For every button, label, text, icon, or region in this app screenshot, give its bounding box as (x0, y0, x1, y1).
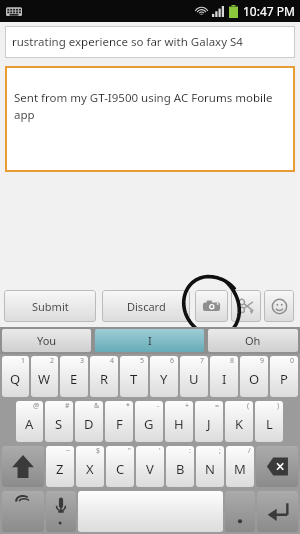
button[interactable]: 7 (180, 356, 208, 397)
staticText: Sent from my GT-I9500 using AC Forums mo… (14, 90, 281, 122)
staticText: A (25, 415, 34, 433)
staticText: @ (33, 401, 40, 411)
staticText: W (38, 370, 51, 388)
staticText: R (100, 370, 109, 388)
button[interactable]: $ (76, 446, 104, 487)
staticText: ( (247, 401, 250, 411)
staticText: - (157, 401, 160, 411)
staticText: 8 (230, 356, 235, 366)
button[interactable]: : (166, 446, 194, 487)
button[interactable]: 4 (90, 356, 118, 397)
button[interactable]: 9 (240, 356, 268, 397)
staticText: H (174, 415, 184, 433)
staticText: I (148, 333, 152, 348)
staticText: D (84, 415, 94, 433)
staticText: Submit (32, 299, 69, 314)
button[interactable]: Backspace (256, 446, 298, 487)
staticText: * (126, 401, 130, 411)
button[interactable]: 0 (270, 356, 298, 397)
button[interactable]: 1 (2, 356, 29, 397)
staticText: C (116, 460, 125, 478)
button[interactable]: / (226, 446, 254, 487)
button[interactable]: Discard (102, 290, 190, 322)
button[interactable]: = (195, 401, 223, 442)
button[interactable]: # (45, 401, 73, 442)
staticText: 7 (200, 356, 205, 366)
staticText: 10:47 PM (243, 3, 295, 19)
staticText: ; (219, 446, 221, 456)
staticText: ~ (66, 446, 71, 456)
staticText: M (234, 460, 246, 478)
staticText: ' (159, 446, 161, 456)
staticText: G (144, 415, 154, 433)
button[interactable]: * (105, 401, 133, 442)
staticText: Discard (127, 299, 166, 314)
button[interactable]: & (75, 401, 103, 442)
staticText: J (207, 415, 211, 433)
button[interactable]: Oh (208, 329, 298, 352)
staticText: 2 (50, 356, 55, 366)
staticText: ) (277, 401, 280, 411)
staticText: 0 (290, 356, 295, 366)
button[interactable]: ) (255, 401, 283, 442)
staticText: E (70, 370, 78, 388)
button[interactable]: ' (136, 446, 164, 487)
staticText: Q (10, 370, 21, 388)
staticText: F (116, 415, 123, 433)
staticText: / (248, 446, 251, 456)
staticText: # (65, 401, 70, 411)
staticText: 9 (260, 356, 265, 366)
staticText: : (189, 446, 191, 456)
button[interactable]: Sent from my GT-I9500 using AC Forums mo… (5, 66, 295, 172)
button[interactable]: Voice input (46, 491, 76, 532)
staticText: I (222, 370, 227, 388)
staticText: P (280, 370, 288, 388)
staticText: X (86, 460, 94, 478)
button[interactable]: - (135, 401, 163, 442)
button[interactable]: You (2, 329, 91, 352)
button[interactable]: 6 (150, 356, 178, 397)
button[interactable]: I (95, 329, 204, 352)
button[interactable]: Shift (2, 446, 44, 487)
button[interactable]: Emoticon (264, 290, 294, 322)
staticText: O (249, 370, 260, 388)
button[interactable]: Enter (257, 491, 298, 532)
button[interactable] (78, 491, 223, 532)
staticText: B (176, 460, 185, 478)
staticText: U (189, 370, 199, 388)
button[interactable]: 8 (210, 356, 238, 397)
button[interactable]: Period (225, 491, 255, 532)
staticText: T (130, 370, 138, 388)
button[interactable]: rustrating experience so far with Galaxy… (5, 26, 295, 58)
button[interactable]: ~ (46, 446, 74, 487)
staticText: 1 (21, 356, 26, 366)
button[interactable]: + (165, 401, 193, 442)
staticText: & (94, 401, 100, 411)
staticText: L (266, 415, 273, 433)
button[interactable]: Attach (231, 290, 261, 322)
button[interactable]: Camera (195, 290, 228, 322)
staticText: K (235, 415, 244, 433)
button[interactable]: ; (196, 446, 224, 487)
button[interactable]: ( (225, 401, 253, 442)
staticText: Oh (245, 333, 261, 348)
staticText: = (215, 401, 220, 411)
staticText: N (205, 460, 215, 478)
button[interactable]: 3 (60, 356, 88, 397)
staticText: Y (160, 370, 168, 388)
staticText: rustrating experience so far with Galaxy… (12, 34, 243, 50)
button[interactable]: " (106, 446, 134, 487)
staticText: 3 (80, 356, 85, 366)
button[interactable]: @ (16, 401, 43, 442)
staticText: You (37, 333, 57, 348)
staticText: 4 (110, 356, 115, 366)
button[interactable]: 5 (120, 356, 148, 397)
button[interactable]: Submit (4, 290, 96, 322)
button[interactable]: Symbols (2, 491, 44, 532)
button[interactable]: 2 (31, 356, 58, 397)
staticText: V (146, 460, 154, 478)
staticText: 6 (170, 356, 175, 366)
staticText: S (55, 415, 63, 433)
staticText: 5 (140, 356, 145, 366)
staticText: " (128, 446, 131, 456)
